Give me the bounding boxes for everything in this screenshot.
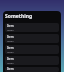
staticText: Item [7,57,14,61]
staticText: Item [7,67,14,71]
staticText: Item [7,24,14,28]
button[interactable]: Item [5,67,59,72]
button[interactable]: Item [5,23,59,32]
staticText: Item [7,35,14,39]
button[interactable]: Item [5,34,59,43]
button[interactable]: Item [5,56,59,65]
staticText: Item [7,46,14,50]
button[interactable]: Item [5,45,59,54]
staticText: detail [7,39,14,42]
staticText: detail [7,28,14,31]
staticText: Something [5,13,33,20]
staticText: detail [7,50,14,53]
staticText: detail [7,61,14,64]
